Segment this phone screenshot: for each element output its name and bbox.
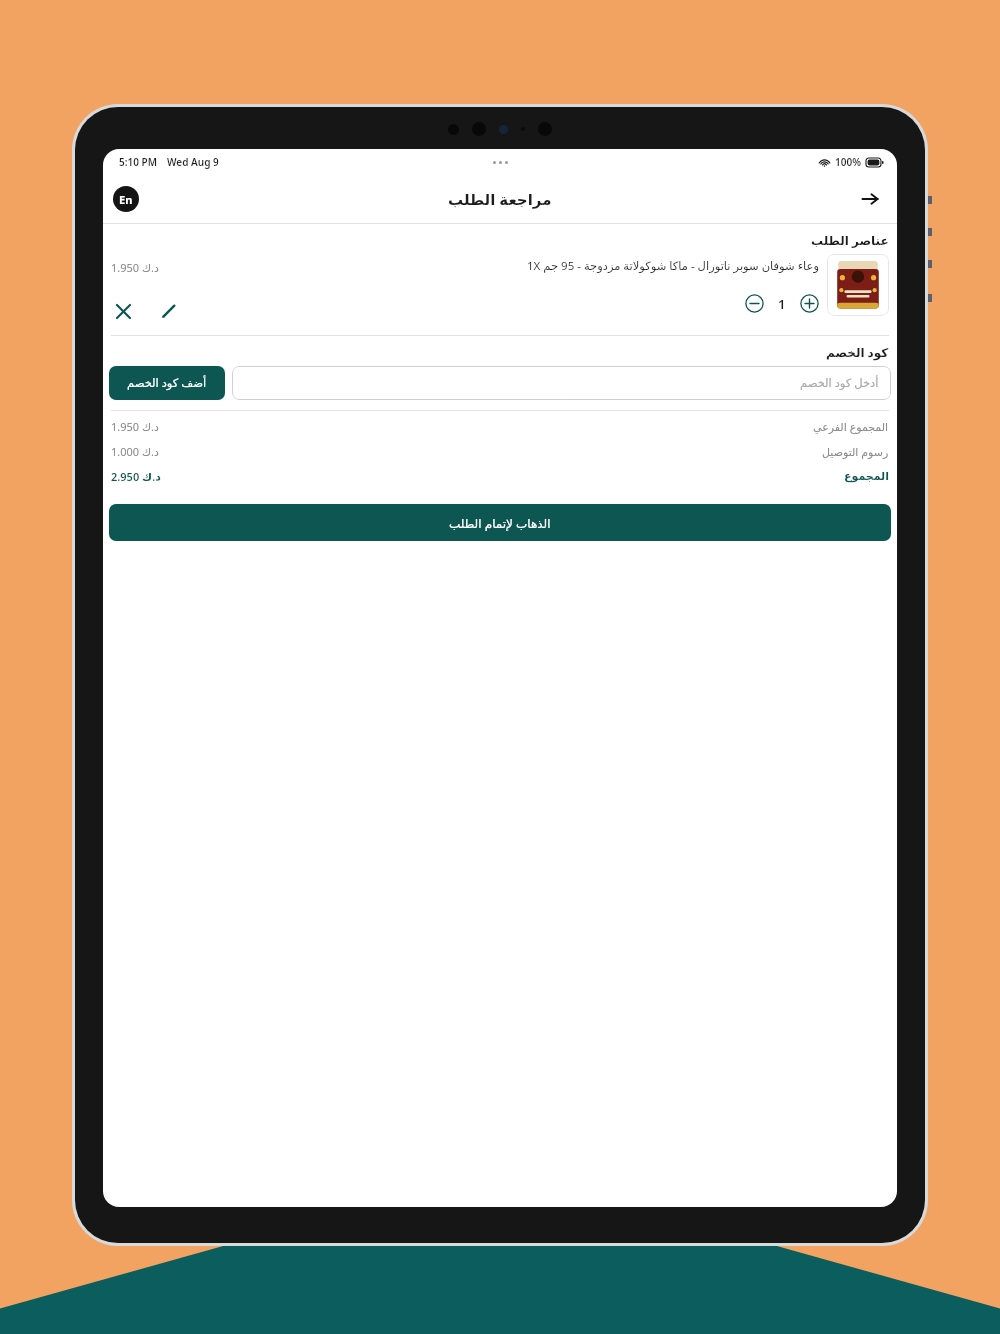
staticText: الذهاب لإتمام الطلب <box>449 515 551 531</box>
button[interactable]: Product image <box>827 254 889 316</box>
staticText: En <box>119 192 133 207</box>
staticText: المجموع <box>844 470 889 483</box>
staticText: رسوم التوصيل <box>822 444 889 459</box>
staticText: كود الخصم <box>826 344 889 360</box>
button[interactable]: Decrease quantity <box>745 294 764 313</box>
staticText: عناصر الطلب <box>811 232 889 248</box>
button[interactable]: أضف كود الخصم <box>109 366 225 400</box>
staticText: مراجعة الطلب <box>448 189 552 209</box>
staticText: د.ك 1.950 <box>111 419 159 434</box>
button[interactable]: Remove item <box>111 299 135 323</box>
button[interactable]: Increase quantity <box>800 294 819 313</box>
button[interactable]: Back <box>853 182 887 216</box>
staticText: المجموع الفرعي <box>813 419 889 434</box>
button[interactable]: Edit item <box>157 299 181 323</box>
staticText: أضف كود الخصم <box>127 375 207 391</box>
button[interactable]: الذهاب لإتمام الطلب <box>109 504 891 541</box>
staticText: د.ك 2.950 <box>111 469 161 484</box>
staticText: د.ك 1.950 <box>111 260 159 275</box>
staticText: 100% <box>835 155 861 169</box>
staticText: 1 <box>778 295 786 313</box>
staticText: أدخل كود الخصم <box>800 375 879 391</box>
button[interactable]: Switch language to English <box>113 186 139 212</box>
staticText: 1X وعاء شوفان سوبر ناتورال - ماكا شوكولا… <box>527 258 819 274</box>
staticText: د.ك 1.000 <box>111 444 159 459</box>
button[interactable]: أدخل كود الخصم <box>232 366 891 400</box>
staticText: 5:10 PM <box>119 155 157 169</box>
staticText: Wed Aug 9 <box>167 155 219 169</box>
